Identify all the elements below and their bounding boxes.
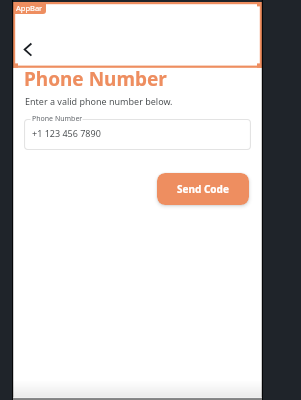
button[interactable]: Send Code [157,173,249,205]
staticText: AppBar [16,3,43,13]
staticText: Enter a valid phone number below. [25,95,173,107]
staticText: +1 123 456 7890 [32,127,101,139]
staticText: Phone Number [24,66,167,92]
button[interactable]: Back [18,33,42,57]
staticText: Phone Number [32,114,83,124]
staticText: Send Code [177,182,229,196]
button[interactable]: +1 123 456 7890 [24,119,251,150]
